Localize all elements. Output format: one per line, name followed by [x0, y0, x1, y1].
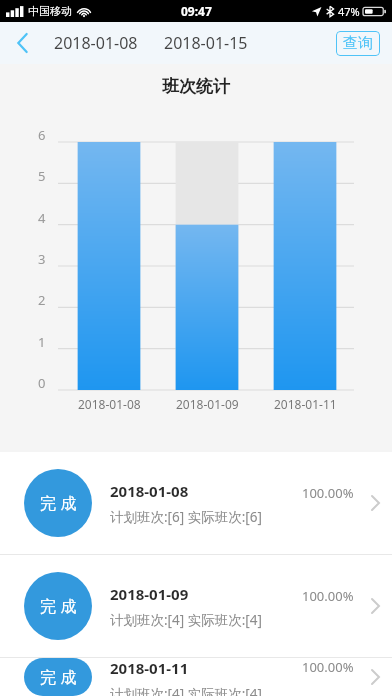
staticText: 2018-01-09	[110, 584, 189, 604]
staticText: 2018-01-11	[110, 658, 189, 678]
staticText: 6	[38, 126, 46, 144]
button[interactable]: 2018-01-15	[162, 32, 250, 54]
staticText: 3	[38, 250, 46, 268]
staticText: 2018-01-08	[78, 396, 141, 412]
staticText: 5	[38, 167, 46, 185]
staticText: 09:47	[181, 3, 212, 19]
staticText: 计划班次:[4] 实际班次:[4]	[110, 685, 262, 696]
staticText: 2018-01-09	[176, 396, 239, 412]
button[interactable]: 完 成	[0, 452, 392, 554]
staticText: 班次统计	[162, 76, 230, 97]
staticText: 中国移动	[28, 4, 72, 18]
staticText: 100.00%	[302, 658, 354, 676]
staticText: 2018-01-08	[110, 481, 189, 501]
button[interactable]: Back	[0, 22, 44, 64]
staticText: 47%	[338, 4, 360, 19]
staticText: 100.00%	[302, 484, 354, 502]
button[interactable]: 查询	[336, 31, 380, 56]
staticText: 2	[38, 291, 46, 309]
staticText: 查询	[343, 34, 373, 53]
staticText: 2018-01-08	[54, 32, 138, 54]
button[interactable]: 完 成	[0, 658, 392, 696]
staticText: 计划班次:[6] 实际班次:[6]	[110, 508, 262, 526]
staticText: 完 成	[40, 595, 77, 617]
staticText: 完 成	[40, 492, 77, 514]
staticText: 100.00%	[302, 587, 354, 605]
staticText: 4	[38, 209, 46, 227]
staticText: 2018-01-15	[164, 32, 248, 54]
staticText: 完 成	[40, 666, 77, 688]
staticText: 计划班次:[4] 实际班次:[4]	[110, 611, 262, 629]
staticText: 1	[38, 333, 46, 351]
staticText: 2018-01-11	[274, 396, 337, 412]
staticText: 0	[38, 374, 46, 392]
button[interactable]: 完 成	[0, 555, 392, 657]
button[interactable]: 2018-01-08	[52, 32, 140, 54]
